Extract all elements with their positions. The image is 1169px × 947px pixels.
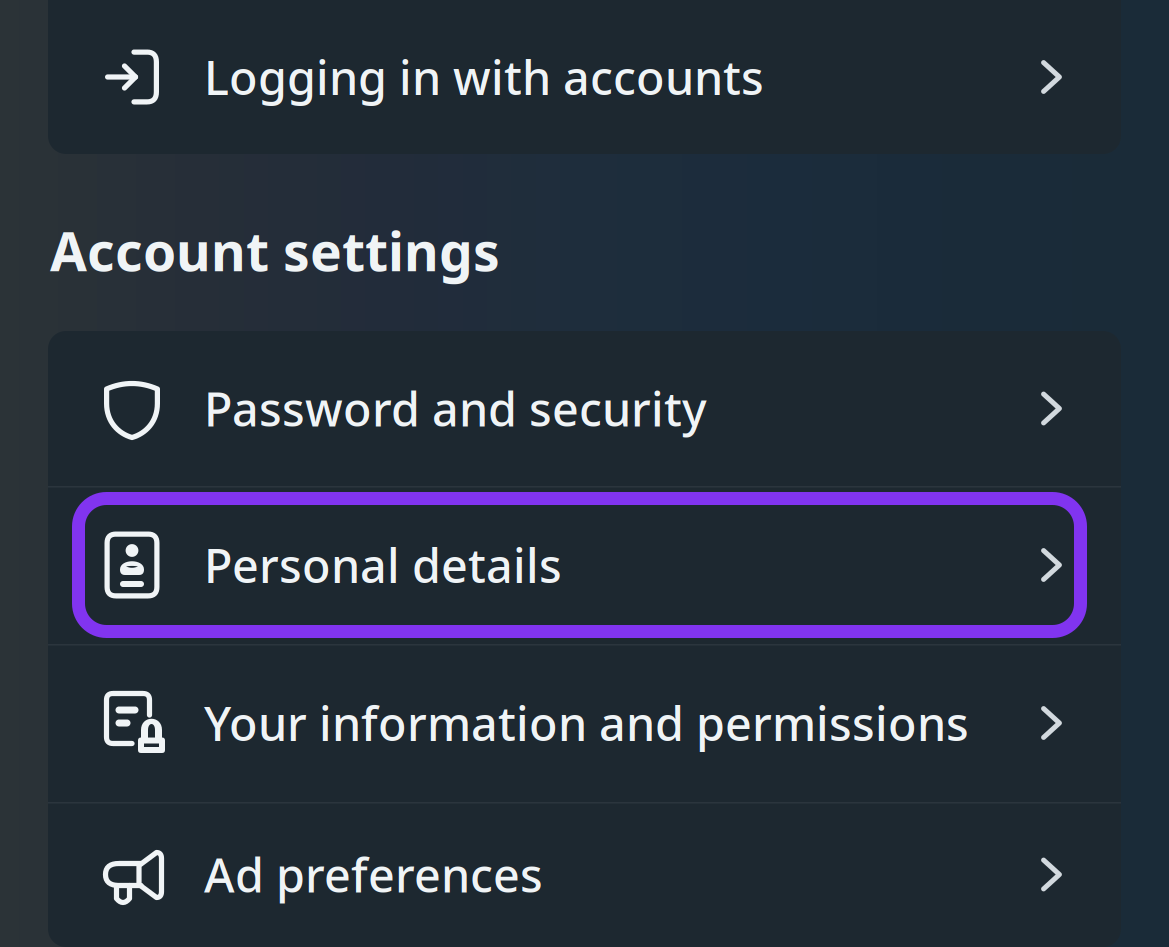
button[interactable]: Logging in with accounts	[48, 0, 1121, 154]
button[interactable]: Password and security	[48, 331, 1121, 486]
staticText: Personal details	[204, 534, 562, 596]
button[interactable]: Your information and permissions	[48, 644, 1121, 802]
staticText: Ad preferences	[204, 843, 543, 905]
button[interactable]: Personal details	[48, 486, 1121, 644]
staticText: Your information and permissions	[204, 692, 969, 754]
staticText: Logging in with accounts	[204, 46, 764, 108]
staticText: Account settings	[50, 215, 500, 286]
button[interactable]: Ad preferences	[48, 802, 1121, 947]
staticText: Password and security	[204, 377, 707, 439]
